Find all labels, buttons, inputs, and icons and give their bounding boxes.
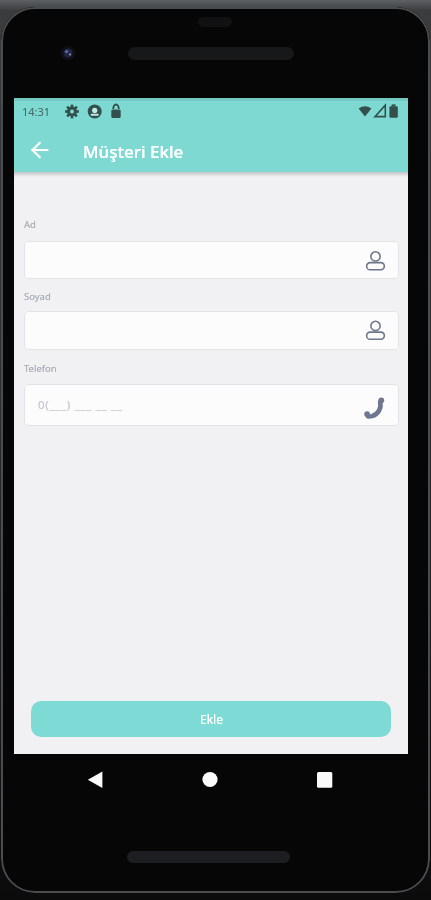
button[interactable]: Ekle: [31, 701, 391, 737]
button[interactable]: [18, 128, 62, 172]
staticText: Soyad: [24, 290, 51, 303]
button[interactable]: [24, 311, 399, 350]
staticText: 0(___) ___ __ __: [38, 397, 123, 413]
button[interactable]: [309, 763, 341, 795]
button[interactable]: [194, 763, 226, 795]
staticText: Ad: [24, 218, 36, 231]
staticText: Telefon: [24, 362, 57, 375]
staticText: Müşteri Ekle: [83, 140, 184, 163]
staticText: 14:31: [22, 104, 51, 119]
button[interactable]: [79, 763, 111, 795]
staticText: Ekle: [200, 711, 223, 727]
button[interactable]: 0(___) ___ __ __: [24, 384, 399, 426]
button[interactable]: [24, 241, 399, 279]
